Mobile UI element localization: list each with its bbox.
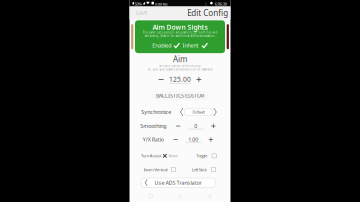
button[interactable]: Home: [172, 192, 188, 201]
button[interactable]: Increase Y/X Ratio: [207, 136, 215, 144]
button[interactable]: Back: [201, 192, 217, 201]
button[interactable]: Toggle: [196, 153, 216, 158]
staticText: Invert Vertical: [143, 167, 167, 172]
staticText: BALLISTICS EDITOR: [156, 92, 204, 99]
staticText: Aim: [173, 54, 187, 64]
staticText: ::: [205, 1, 207, 6]
button[interactable]: Invert Vertical: [143, 167, 175, 172]
staticText: Inherit: [182, 42, 198, 49]
staticText: SAVE: [136, 9, 148, 17]
staticText: Left Stick: [192, 167, 207, 172]
staticText: 125.00: [169, 75, 191, 84]
button[interactable]: Left Stick: [192, 167, 216, 172]
button[interactable]: Next profile: [213, 107, 218, 116]
staticText: 0: [194, 122, 197, 129]
staticText: Default: [192, 109, 204, 115]
staticText: Edit Config: [187, 8, 228, 18]
button[interactable]: BALLISTICS EDITOR: [152, 91, 208, 100]
button[interactable]: Recent apps: [143, 192, 159, 201]
button[interactable]: Clear turn assist: [161, 153, 169, 159]
staticText: Y/X Ratio: [143, 136, 164, 143]
button[interactable]: Decrease Y/X Ratio: [172, 136, 180, 144]
button[interactable]: Previous profile: [179, 107, 184, 116]
button[interactable]: Decrease Smoothing: [174, 122, 182, 130]
staticText: Sets your mouse aim sensitivity.: [159, 64, 201, 67]
staticText: Aim Down Sights: [152, 23, 207, 32]
staticText: Turn Assist: [141, 153, 161, 158]
staticText: Enabled: [152, 42, 171, 49]
staticText: 6:06:30: [215, 1, 227, 7]
button[interactable]: Increase aim sensitivity: [194, 75, 203, 84]
button[interactable]: Decrease aim sensitivity: [157, 75, 166, 84]
staticText: 50%: [134, 1, 141, 7]
staticText: ads aiming. Enable for additional ADS cu…: [144, 34, 215, 38]
staticText: Smoothing: [140, 122, 166, 130]
staticText: None: [169, 153, 178, 158]
button[interactable]: Increase Smoothing: [209, 122, 217, 130]
staticText: Toggle: [196, 153, 207, 158]
button[interactable]: Default: [184, 108, 212, 115]
staticText: 0.00 K/s: [155, 1, 168, 7]
staticText: Be sure your game's sensitivity is set t…: [147, 68, 212, 71]
button[interactable]: SAVE: [129, 6, 148, 19]
staticText: Use ADS Translator: [155, 179, 202, 186]
button[interactable]: Aim Down Sights: [135, 20, 225, 53]
staticText: 1.00: [188, 136, 198, 143]
button[interactable]: Use ADS Translator: [141, 178, 215, 187]
staticText: Synchronize: [141, 108, 171, 116]
staticText: This game uses a single aim gradient for…: [142, 31, 217, 34]
